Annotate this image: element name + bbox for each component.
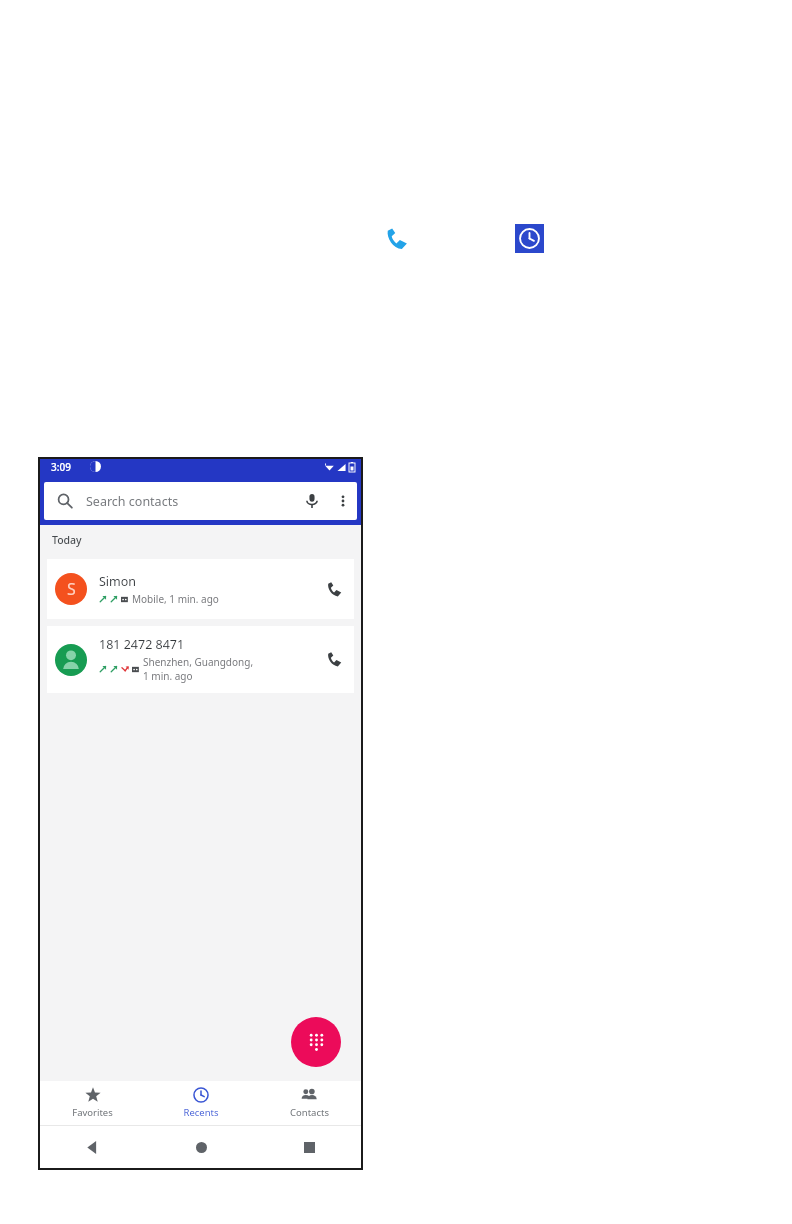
- button[interactable]: More options: [329, 482, 357, 520]
- staticText: 181 2472 8471: [99, 636, 185, 653]
- button[interactable]: Phone app: [382, 224, 411, 253]
- staticText: S: [67, 578, 76, 600]
- button[interactable]: 181 2472 8471: [47, 626, 354, 693]
- button[interactable]: Back: [38, 1125, 147, 1170]
- staticText: Search contacts: [86, 493, 295, 510]
- staticText: Contacts: [290, 1106, 329, 1119]
- button[interactable]: Dialpad: [291, 1017, 341, 1067]
- button[interactable]: Favorites: [38, 1081, 147, 1125]
- staticText: 1 min. ago: [143, 669, 193, 683]
- button[interactable]: Recents: [147, 1081, 255, 1125]
- button[interactable]: Voice search: [295, 482, 329, 520]
- button[interactable]: Call: [314, 559, 354, 619]
- staticText: Recents: [183, 1106, 219, 1119]
- staticText: Mobile, 1 min. ago: [132, 592, 219, 606]
- button[interactable]: Call: [314, 626, 354, 693]
- staticText: 3:09: [51, 460, 71, 474]
- staticText: Shenzhen, Guangdong,: [143, 655, 254, 669]
- button[interactable]: Contacts: [255, 1081, 363, 1125]
- button[interactable]: S: [47, 559, 354, 619]
- staticText: Favorites: [72, 1106, 113, 1119]
- button[interactable]: Recent apps: [255, 1125, 363, 1170]
- staticText: Today: [52, 533, 82, 547]
- staticText: Simon: [99, 573, 137, 590]
- button[interactable]: Search contacts: [44, 482, 357, 520]
- button[interactable]: Home: [147, 1125, 255, 1170]
- button[interactable]: Clock app: [515, 224, 544, 253]
